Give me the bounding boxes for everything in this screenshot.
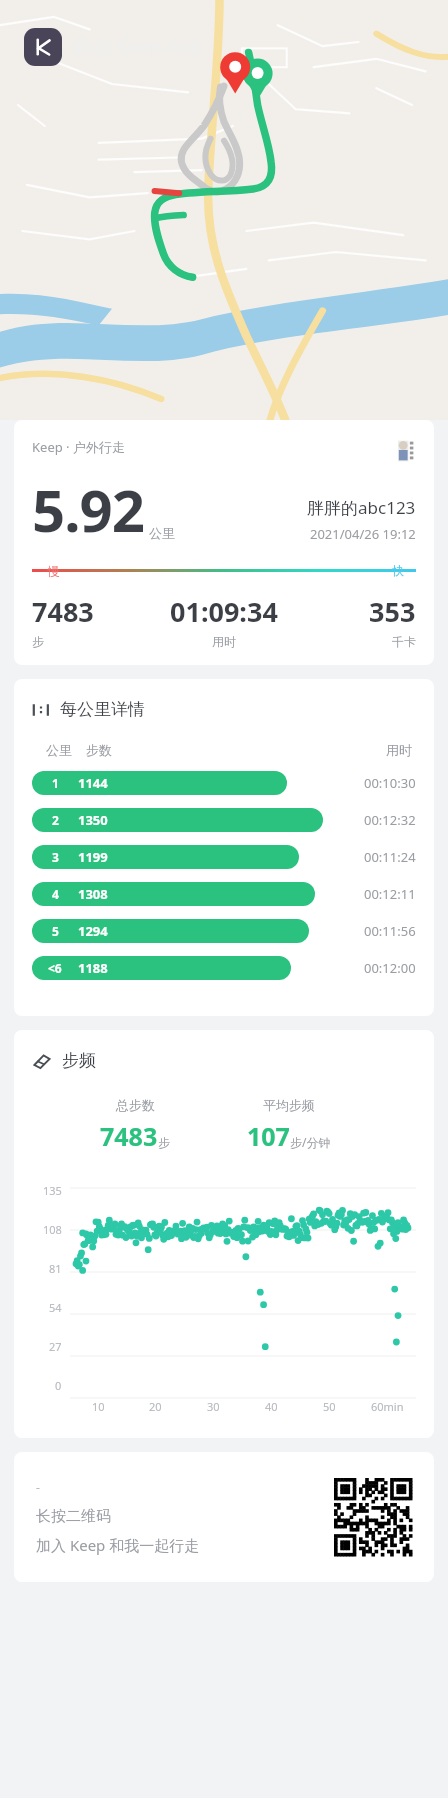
- staticText: 1199: [78, 848, 108, 866]
- staticText: 40: [265, 1399, 278, 1414]
- staticText: 慢: [48, 563, 60, 578]
- button[interactable]: 1: [32, 770, 416, 796]
- staticText: 30: [207, 1399, 220, 1414]
- staticText: 1294: [78, 922, 108, 940]
- staticText: 00:10:30: [364, 774, 416, 792]
- staticText: 步数: [86, 742, 112, 758]
- staticText: 快: [392, 563, 404, 578]
- staticText: 5.92: [32, 470, 144, 549]
- staticText: 用时: [212, 634, 236, 649]
- staticText: 长按二维码: [36, 1507, 111, 1526]
- button[interactable]: 每公里详情: [14, 679, 434, 1016]
- staticText: 00:12:11: [364, 885, 416, 903]
- staticText: -: [36, 1479, 40, 1495]
- other: QR code: [334, 1478, 412, 1556]
- staticText: 平均步频: [263, 1097, 315, 1113]
- staticText: 步: [158, 1135, 170, 1150]
- staticText: 步频: [62, 1050, 96, 1071]
- button[interactable]: 5: [32, 918, 416, 944]
- staticText: 3: [52, 849, 59, 865]
- staticText: 01:09:34: [170, 593, 278, 630]
- staticText: 千卡: [392, 634, 416, 649]
- button[interactable]: 2: [32, 807, 416, 833]
- staticText: 7483: [100, 1119, 158, 1153]
- staticText: 胖胖的abc123: [307, 496, 416, 519]
- staticText: 135: [43, 1183, 62, 1198]
- staticText: 步/分钟: [290, 1134, 331, 1150]
- staticText: 0: [55, 1378, 62, 1393]
- staticText: 108: [43, 1222, 62, 1237]
- button[interactable]: Keep · 户外行走: [14, 420, 434, 665]
- staticText: 10: [92, 1399, 105, 1414]
- staticText: 1308: [78, 885, 108, 903]
- staticText: 每公里详情: [60, 699, 145, 720]
- button[interactable]: Keep: [24, 28, 205, 66]
- button[interactable]: 步频: [14, 1030, 434, 1438]
- staticText: 5: [52, 923, 59, 939]
- staticText: 50: [323, 1399, 336, 1414]
- staticText: 00:12:00: [364, 959, 416, 977]
- staticText: 公里: [46, 742, 72, 758]
- staticText: 总步数: [116, 1097, 155, 1113]
- staticText: 00:11:24: [364, 848, 416, 866]
- staticText: 353: [369, 593, 416, 630]
- button[interactable]: 4: [32, 881, 416, 907]
- button[interactable]: -: [14, 1452, 434, 1582]
- staticText: 00:11:56: [364, 922, 416, 940]
- staticText: 27: [49, 1339, 62, 1354]
- staticText: 7483: [32, 593, 94, 630]
- staticText: 60min: [371, 1399, 404, 1414]
- staticText: 公里: [149, 525, 175, 541]
- staticText: 107: [247, 1119, 290, 1153]
- staticText: <6: [48, 960, 62, 976]
- staticText: 1144: [78, 774, 108, 792]
- staticText: 1350: [78, 811, 108, 829]
- staticText: 00:12:32: [364, 811, 416, 829]
- staticText: 1: [52, 775, 59, 791]
- button[interactable]: 3: [32, 844, 416, 870]
- staticText: 1188: [78, 959, 108, 977]
- staticText: 用时: [386, 742, 412, 758]
- staticText: 2: [52, 812, 59, 828]
- staticText: 步: [32, 634, 44, 649]
- staticText: 2021/04/26 19:12: [310, 525, 416, 543]
- staticText: 20: [149, 1399, 162, 1414]
- staticText: 81: [49, 1261, 62, 1276]
- staticText: 54: [49, 1300, 62, 1315]
- staticText: Keep · 户外行走: [32, 438, 125, 456]
- staticText: 加入 Keep 和我一起行走: [36, 1535, 200, 1555]
- staticText: 4: [52, 886, 59, 902]
- button[interactable]: <6: [32, 955, 416, 981]
